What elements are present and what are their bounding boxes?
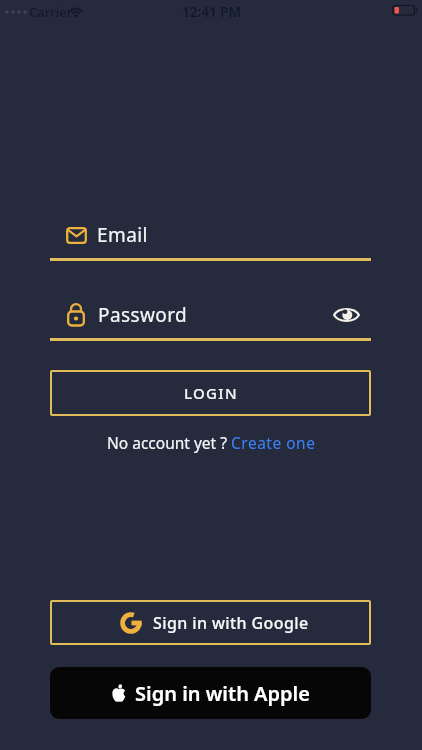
staticText: Password [98,302,188,328]
button[interactable]: Password [50,295,371,335]
button[interactable]: Create one [231,432,316,453]
button[interactable]: Email [50,215,371,255]
staticText: LOGIN [184,383,238,403]
staticText: Sign in with Apple [135,680,310,707]
staticText: Carrier [29,3,73,21]
button[interactable]: Sign in with Apple [50,667,371,719]
button[interactable] [332,301,360,329]
staticText: 12:41 PM [182,3,241,21]
staticText: Sign in with Google [153,612,309,634]
staticText: Email [97,222,148,248]
button[interactable]: Sign in with Google [50,600,371,645]
button[interactable]: LOGIN [50,370,371,416]
staticText: No account yet ? [107,432,231,453]
